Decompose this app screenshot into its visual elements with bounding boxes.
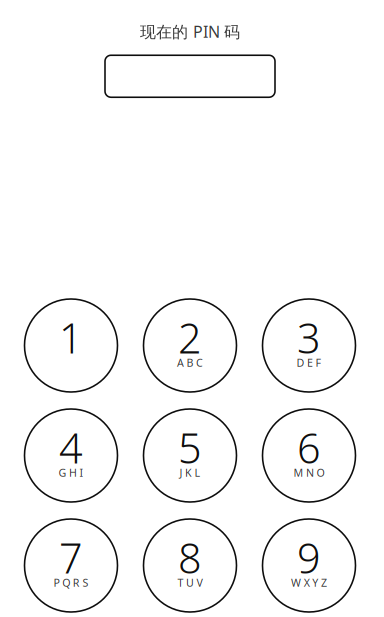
staticText: H bbox=[69, 465, 77, 480]
button[interactable]: 1 bbox=[24, 299, 117, 392]
button[interactable]: 3 DEF bbox=[262, 299, 355, 392]
staticText: X bbox=[304, 575, 310, 590]
button[interactable]: 7 PQRS bbox=[24, 519, 117, 612]
staticText: O bbox=[317, 465, 325, 480]
staticText: 4 bbox=[59, 420, 83, 475]
button[interactable]: 5 JKL bbox=[143, 409, 236, 502]
staticText: C bbox=[196, 355, 203, 370]
staticText: M bbox=[293, 465, 303, 480]
staticText: J bbox=[179, 465, 182, 480]
staticText: N bbox=[306, 465, 314, 480]
staticText: D bbox=[296, 355, 304, 370]
staticText: A bbox=[177, 355, 184, 370]
staticText: P bbox=[54, 575, 60, 590]
staticText: T bbox=[177, 575, 183, 590]
staticText: 5 bbox=[178, 420, 202, 475]
staticText: K bbox=[185, 465, 192, 480]
staticText: 9 bbox=[297, 530, 321, 585]
staticText: Q bbox=[62, 575, 70, 590]
staticText: 6 bbox=[297, 420, 321, 475]
staticText: U bbox=[186, 575, 194, 590]
staticText: 2 bbox=[178, 310, 202, 365]
staticText: I bbox=[80, 465, 84, 480]
staticText: 现在的 PIN 码 bbox=[140, 21, 240, 42]
button[interactable]: 6 MNO bbox=[262, 409, 355, 502]
staticText: 1 bbox=[59, 310, 83, 365]
staticText: S bbox=[82, 575, 88, 590]
staticText: Y bbox=[312, 575, 318, 590]
staticText: R bbox=[73, 575, 80, 590]
staticText: L bbox=[195, 465, 201, 480]
button[interactable]: PIN entry field bbox=[105, 55, 275, 97]
staticText: 8 bbox=[178, 530, 202, 585]
button[interactable]: 9 WXYZ bbox=[262, 519, 355, 612]
staticText: B bbox=[186, 355, 193, 370]
button[interactable]: 4 GHI bbox=[24, 409, 117, 502]
staticText: W bbox=[291, 575, 301, 590]
staticText: 7 bbox=[59, 530, 83, 585]
staticText: E bbox=[307, 355, 313, 370]
staticText: G bbox=[58, 465, 66, 480]
staticText: 3 bbox=[297, 310, 321, 365]
staticText: V bbox=[197, 575, 203, 590]
staticText: F bbox=[316, 355, 322, 370]
button[interactable]: 2 ABC bbox=[143, 299, 236, 392]
button[interactable]: 8 TUV bbox=[143, 519, 236, 612]
staticText: Z bbox=[321, 575, 327, 590]
